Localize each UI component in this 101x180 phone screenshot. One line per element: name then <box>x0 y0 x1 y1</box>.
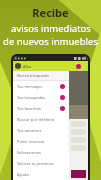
staticText: Valorar tu provincia <box>17 161 54 166</box>
staticText: Poner anuncio <box>17 139 45 144</box>
button[interactable]: Ayuda <box>13 169 69 180</box>
button[interactable]: Poner anuncio <box>13 136 69 147</box>
button[interactable]: Tus búsquedas <box>13 92 69 103</box>
staticText: Buscar por teléfono <box>17 117 55 122</box>
staticText: Tus anuncios <box>17 128 42 133</box>
staticText: Alba <box>23 64 32 69</box>
staticText: Tus favoritos <box>17 106 41 111</box>
button[interactable]: Alba <box>13 61 69 71</box>
staticText: Recibe <box>32 5 69 20</box>
button[interactable]: Buscar por teléfono <box>13 114 69 125</box>
staticText: Ayuda <box>17 172 29 177</box>
staticText: Nueva búsqueda <box>17 73 49 78</box>
button[interactable]: Valorar tu provincia <box>13 158 69 169</box>
staticText: de nuevos inmuebles <box>3 35 98 48</box>
staticText: Tus búsquedas <box>17 95 46 100</box>
button[interactable]: Tus anuncios <box>13 125 69 136</box>
staticText: Valoraciones <box>17 150 41 155</box>
button[interactable]: Valoraciones <box>13 147 69 158</box>
button[interactable]: Notificaciones <box>76 64 81 69</box>
staticText: Tus mensajes <box>17 84 43 89</box>
button[interactable]: Tus favoritos <box>13 103 69 114</box>
button[interactable]: Tus mensajes <box>13 81 69 92</box>
staticText: avisos inmediatos <box>11 22 91 35</box>
button[interactable]: Nueva búsqueda <box>13 71 69 80</box>
